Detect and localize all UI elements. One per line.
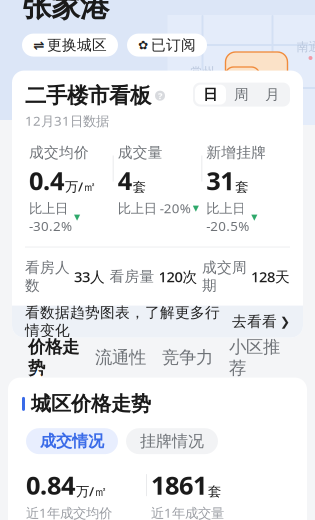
staticText: ? — [158, 89, 162, 102]
staticText: 31 — [206, 163, 234, 197]
button[interactable]: 挂牌情况 — [126, 428, 218, 454]
staticText: 新增挂牌 — [206, 143, 266, 161]
staticText: 更换城区 — [47, 36, 107, 54]
staticText: 比上日 -30.2% — [29, 199, 72, 235]
staticText: 120次 — [158, 267, 197, 286]
staticText: 万/㎡ — [65, 177, 96, 195]
staticText: ❯ — [280, 315, 290, 328]
staticText: ⇌ — [33, 37, 44, 53]
staticText: ▼ — [193, 203, 199, 213]
button[interactable]: 日 — [195, 85, 226, 105]
button[interactable]: 小区推荐 — [221, 343, 288, 373]
staticText: 12月31日数据 — [25, 112, 109, 129]
button[interactable]: 流通性 — [87, 343, 154, 373]
staticText: 近1年成交量 — [151, 504, 224, 520]
button[interactable]: 价格走势 — [20, 343, 87, 373]
staticText: 0.84 — [26, 468, 75, 502]
staticText: 价格走势 — [28, 336, 79, 379]
staticText: 套 — [208, 483, 221, 500]
staticText: 看房人数 — [25, 259, 70, 295]
staticText: 套 — [235, 179, 248, 195]
staticText: 0.4 — [29, 163, 64, 197]
staticText: 128天 — [251, 267, 290, 286]
staticText: 套 — [133, 179, 146, 195]
staticText: 流通性 — [95, 347, 146, 368]
button[interactable]: 周 — [226, 85, 257, 105]
staticText: 万/㎡ — [76, 482, 107, 500]
staticText: ✿ — [138, 38, 148, 52]
button[interactable]: 月 — [257, 85, 288, 105]
staticText: 已订阅 — [151, 36, 196, 54]
staticText: 常州 — [190, 65, 214, 79]
staticText: 比上日 -20% — [118, 199, 191, 217]
staticText: 竞争力 — [162, 347, 213, 368]
staticText: 近1年成交均价 — [26, 504, 112, 520]
staticText: 挂牌情况 — [140, 431, 204, 451]
staticText: 成交量 — [118, 143, 163, 161]
staticText: 看房量 — [109, 268, 154, 286]
staticText: 二手楼市看板 — [25, 83, 151, 109]
staticText: 看数据趋势图表，了解更多行情变化 — [25, 304, 220, 340]
staticText: 比上日 -20.5% — [206, 199, 249, 235]
button[interactable]: ⇌ — [22, 34, 118, 57]
staticText: 成交均价 — [29, 143, 89, 161]
staticText: 成交情况 — [40, 431, 104, 451]
staticText: 日 — [203, 86, 218, 104]
staticText: ▼ — [251, 212, 257, 221]
staticText: 1861 — [151, 468, 207, 502]
staticText: 成交周期 — [202, 259, 247, 295]
button[interactable]: 竞争力 — [154, 343, 221, 373]
button[interactable]: 看数据趋势图表，了解更多行情变化 — [12, 306, 303, 338]
staticText: 4 — [118, 163, 132, 197]
staticText: ▲ — [32, 365, 43, 382]
staticText: 去看看 — [232, 313, 277, 331]
staticText: ▼ — [74, 212, 80, 221]
staticText: 月 — [265, 86, 280, 104]
staticText: 南通 — [296, 40, 315, 54]
button[interactable]: ✿ — [127, 34, 207, 57]
staticText: 张家港 — [22, 0, 109, 25]
staticText: 城区价格走势 — [31, 392, 151, 416]
staticText: 周 — [234, 86, 249, 104]
button[interactable]: 成交情况 — [26, 428, 118, 454]
staticText: 33人 — [74, 267, 105, 286]
staticText: 小区推荐 — [229, 336, 280, 379]
